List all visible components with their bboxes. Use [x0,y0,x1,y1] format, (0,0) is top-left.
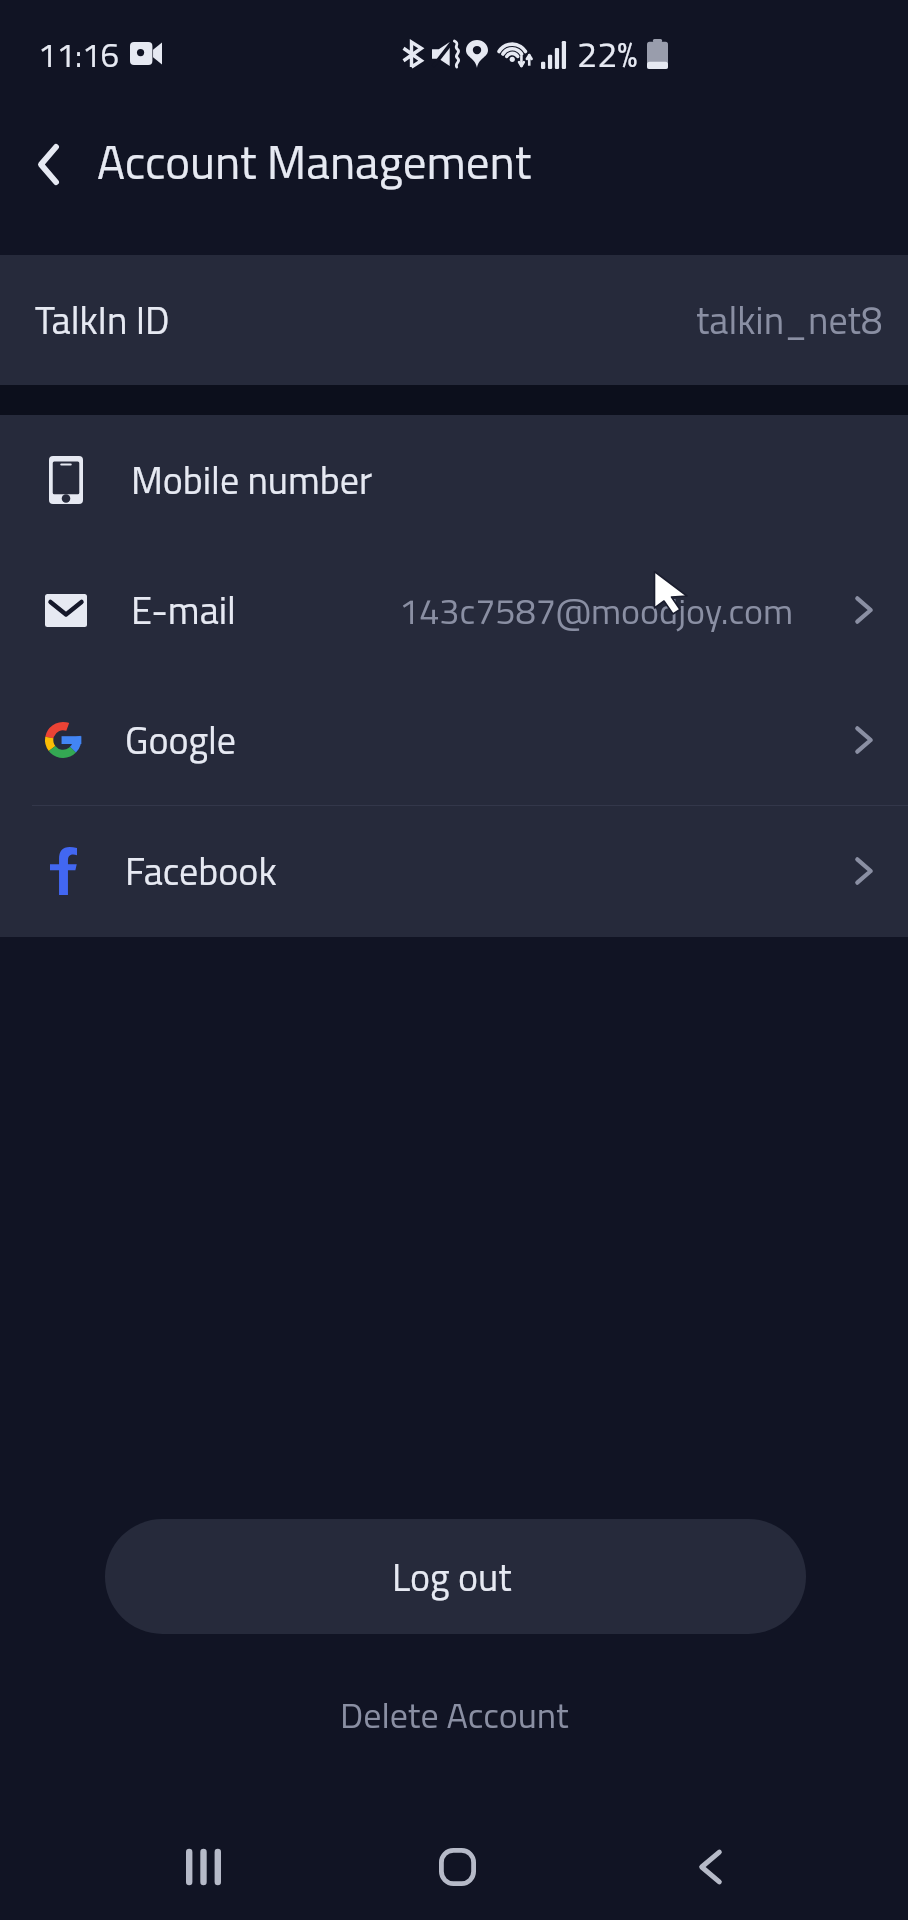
staticText: E-mail [131,581,236,639]
button[interactable]: Log out [105,1519,806,1634]
staticText: 143c7587@moodjoy.com [399,583,794,638]
button[interactable]: Back [655,1812,765,1920]
staticText: 22% [577,26,638,81]
button[interactable]: Facebook [0,806,908,936]
staticText: Log out [392,1548,512,1606]
staticText: Google [125,711,237,769]
button[interactable]: Home [402,1812,512,1920]
button[interactable]: TalkIn ID [0,255,908,385]
staticText: Account Management [97,126,532,197]
button[interactable]: Back [14,130,82,198]
button[interactable]: Mobile number [0,415,908,545]
staticText: TalkIn ID [35,291,170,349]
staticText: Facebook [125,842,277,900]
staticText: Delete Account [340,1687,569,1742]
staticText: talkin_net8 [696,291,883,349]
staticText: 11:16 [38,30,120,80]
staticText: Mobile number [131,451,373,509]
button[interactable]: Recent apps [148,1812,258,1920]
button[interactable]: E-mail [0,545,908,675]
button[interactable]: Google [0,675,908,805]
button[interactable]: Delete Account [320,1684,589,1744]
